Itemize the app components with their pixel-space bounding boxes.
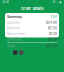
staticText: 9:41 — [2, 0, 8, 4]
staticText: $24.90 — [46, 21, 57, 25]
staticText: Subtotal — [7, 21, 20, 25]
button[interactable]: Edit — [51, 15, 57, 18]
staticText: Total — [7, 44, 15, 48]
staticText: ıll ⌁ ▮ — [52, 0, 61, 4]
staticText: Summary — [7, 15, 22, 19]
staticText: Delivery — [7, 26, 20, 30]
staticText: -$3.00 — [47, 37, 57, 41]
staticText: Service fee — [7, 32, 25, 36]
staticText: Order details — [20, 6, 43, 11]
staticText: $25.60 — [46, 44, 57, 48]
staticText: $1.20 — [49, 32, 57, 36]
staticText: Discount — [7, 37, 21, 41]
staticText: $2.50 — [48, 26, 57, 30]
staticText: Edit — [51, 15, 57, 18]
